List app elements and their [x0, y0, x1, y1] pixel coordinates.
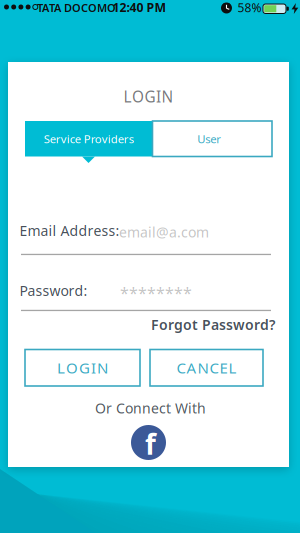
staticText: TATA DOCOMO: [37, 0, 116, 15]
button[interactable]: CANCEL: [150, 349, 263, 386]
staticText: CANCEL: [176, 357, 236, 378]
button[interactable]: Service Providers: [25, 121, 152, 156]
staticText: Or Connect With: [95, 398, 206, 418]
button[interactable]: Forgot Password?: [151, 315, 275, 334]
button[interactable]: Connect with Facebook: [131, 425, 166, 460]
staticText: Email Address:: [19, 221, 119, 240]
staticText: 12:40 PM: [112, 0, 166, 15]
staticText: Password:: [19, 281, 87, 300]
staticText: Service Providers: [44, 131, 134, 146]
staticText: LOGIN: [57, 357, 108, 378]
staticText: LOGIN: [123, 86, 173, 107]
staticText: ********: [120, 282, 192, 304]
staticText: f: [145, 425, 156, 463]
button[interactable]: LOGIN: [25, 349, 140, 386]
staticText: User: [197, 131, 221, 146]
button[interactable]: User: [152, 121, 272, 156]
staticText: 58%: [237, 0, 261, 16]
staticText: Forgot Password?: [151, 315, 275, 334]
staticText: email@a.com: [119, 222, 209, 242]
